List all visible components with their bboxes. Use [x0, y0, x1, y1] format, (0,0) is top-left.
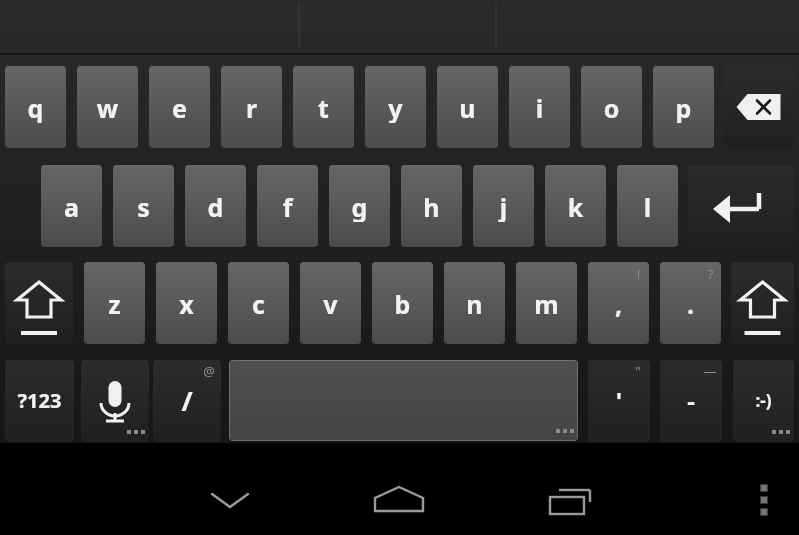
button[interactable]: f — [257, 165, 318, 247]
button[interactable]: u — [437, 66, 498, 148]
staticText: ' — [588, 384, 650, 420]
staticText: l — [617, 190, 678, 222]
button[interactable]: — — [660, 360, 722, 442]
staticText: @ — [201, 362, 217, 382]
staticText: o — [581, 91, 642, 123]
button[interactable]: :-) — [733, 360, 794, 442]
button[interactable]: ?123 — [5, 360, 74, 442]
staticText: v — [300, 287, 361, 319]
button[interactable]: w — [77, 66, 138, 148]
button[interactable]: Enter — [688, 165, 794, 247]
button[interactable]: y — [365, 66, 426, 148]
staticText: g — [329, 190, 390, 222]
button[interactable]: @ — [153, 360, 221, 442]
staticText: w — [77, 91, 138, 123]
button[interactable]: x — [156, 262, 217, 344]
button[interactable]: Recents — [536, 471, 604, 529]
button[interactable]: Home — [365, 471, 433, 529]
button[interactable]: q — [5, 66, 66, 148]
staticText: k — [545, 190, 606, 222]
staticText: p — [653, 91, 714, 123]
staticText: e — [149, 91, 210, 123]
staticText: . — [660, 287, 721, 319]
button[interactable]: Backspace — [723, 66, 794, 148]
button[interactable]: Menu — [735, 471, 793, 529]
button[interactable]: j — [473, 165, 534, 247]
button[interactable]: Space — [229, 360, 578, 441]
staticText: m — [516, 287, 577, 319]
button[interactable]: h — [401, 165, 462, 247]
button[interactable]: r — [221, 66, 282, 148]
staticText: y — [365, 91, 426, 123]
button[interactable]: e — [149, 66, 210, 148]
staticText: ? — [703, 265, 718, 283]
button[interactable]: Shift — [731, 262, 794, 344]
button[interactable]: c — [228, 262, 289, 344]
staticText: q — [5, 91, 66, 123]
staticText: r — [221, 91, 282, 123]
button[interactable]: g — [329, 165, 390, 247]
button[interactable]: d — [185, 165, 246, 247]
button[interactable]: z — [84, 262, 145, 344]
staticText: j — [473, 190, 534, 222]
staticText: t — [293, 91, 354, 123]
staticText: , — [588, 287, 649, 319]
button[interactable]: s — [113, 165, 174, 247]
staticText: f — [257, 190, 318, 222]
staticText: " — [630, 362, 646, 382]
button[interactable]: Voice input — [81, 360, 149, 442]
staticText: b — [372, 287, 433, 319]
staticText: - — [660, 384, 722, 420]
staticText: z — [84, 287, 145, 319]
staticText: ?123 — [5, 387, 74, 417]
staticText: u — [437, 91, 498, 123]
button[interactable]: p — [653, 66, 714, 148]
staticText: i — [509, 91, 570, 123]
button[interactable]: i — [509, 66, 570, 148]
button[interactable]: o — [581, 66, 642, 148]
button[interactable]: Shift — [5, 262, 73, 344]
staticText: ! — [631, 265, 646, 283]
button[interactable]: m — [516, 262, 577, 344]
button[interactable]: a — [41, 165, 102, 247]
button[interactable]: l — [617, 165, 678, 247]
button[interactable]: Hide keyboard — [196, 471, 264, 529]
staticText: / — [153, 382, 221, 423]
button[interactable]: b — [372, 262, 433, 344]
button[interactable]: ! — [588, 262, 649, 344]
staticText: c — [228, 287, 289, 319]
staticText: d — [185, 190, 246, 222]
button[interactable]: k — [545, 165, 606, 247]
staticText: :-) — [733, 389, 794, 415]
button[interactable]: n — [444, 262, 505, 344]
staticText: a — [41, 190, 102, 222]
staticText: s — [113, 190, 174, 222]
staticText: x — [156, 287, 217, 319]
staticText: h — [401, 190, 462, 222]
button[interactable]: v — [300, 262, 361, 344]
button[interactable]: " — [588, 360, 650, 442]
staticText: — — [702, 362, 718, 382]
button[interactable]: ? — [660, 262, 721, 344]
staticText: n — [444, 287, 505, 319]
button[interactable]: t — [293, 66, 354, 148]
